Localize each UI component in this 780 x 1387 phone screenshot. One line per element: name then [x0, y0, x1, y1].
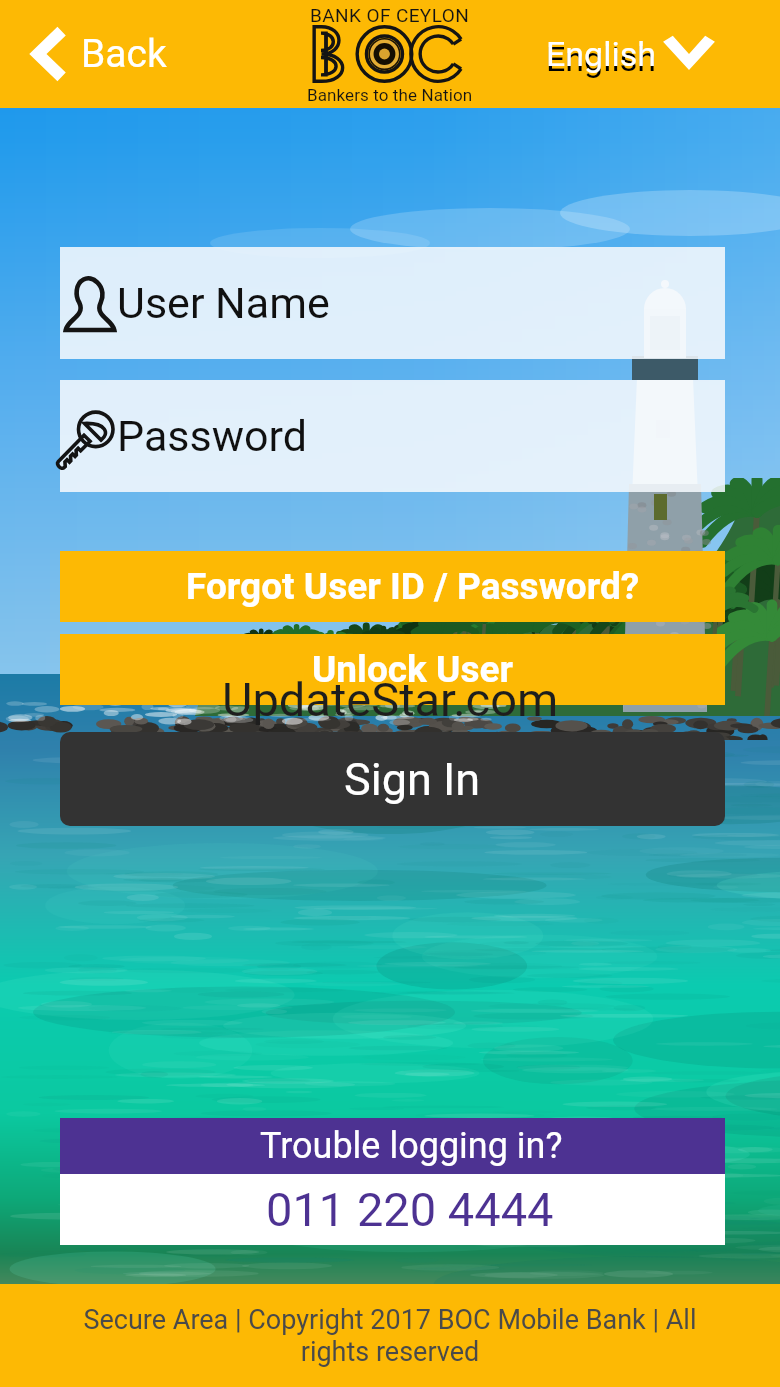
staticText: Forgot User ID / Password? — [186, 565, 640, 608]
staticText: Back — [81, 31, 167, 77]
button[interactable]: Back — [0, 0, 181, 108]
button[interactable]: English, change language — [546, 0, 780, 108]
staticText: Trouble logging in? — [260, 1125, 563, 1167]
staticText: English — [546, 34, 657, 74]
staticText: English — [546, 39, 657, 79]
other: Bank of Ceylon logo — [290, 0, 490, 108]
staticText: Sign In — [344, 753, 481, 806]
staticText: User Name — [117, 278, 330, 328]
staticText: Unlock User — [312, 648, 514, 691]
staticText: Bankers to the Nation — [307, 85, 473, 105]
button[interactable]: Password — [60, 380, 725, 492]
button[interactable]: Unlock User — [60, 634, 725, 705]
staticText: Password — [117, 411, 307, 461]
button[interactable]: Sign In — [60, 732, 725, 826]
staticText: 011 220 4444 — [266, 1182, 554, 1237]
button[interactable]: 011 220 4444 — [60, 1174, 725, 1245]
button[interactable]: User Name — [60, 247, 725, 359]
button[interactable]: Forgot User ID / Password? — [60, 551, 725, 622]
staticText: UpdateStar.com — [222, 672, 559, 727]
staticText: Secure Area | Copyright 2017 BOC Mobile … — [68, 1304, 712, 1368]
staticText: BANK OF CEYLON — [310, 4, 470, 26]
